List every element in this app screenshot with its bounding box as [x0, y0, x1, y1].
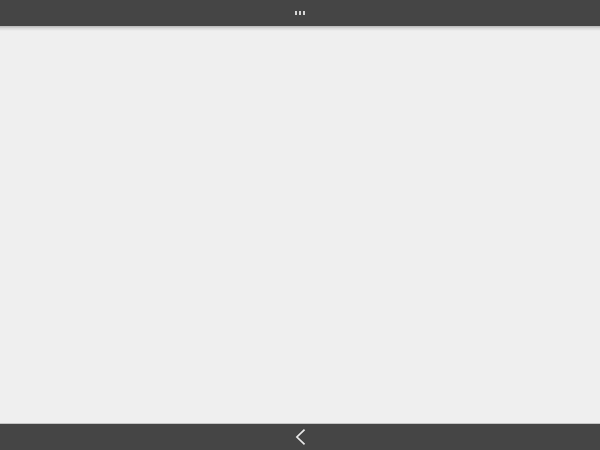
button[interactable]: Back [287, 424, 313, 450]
button[interactable]: More options [290, 3, 310, 23]
